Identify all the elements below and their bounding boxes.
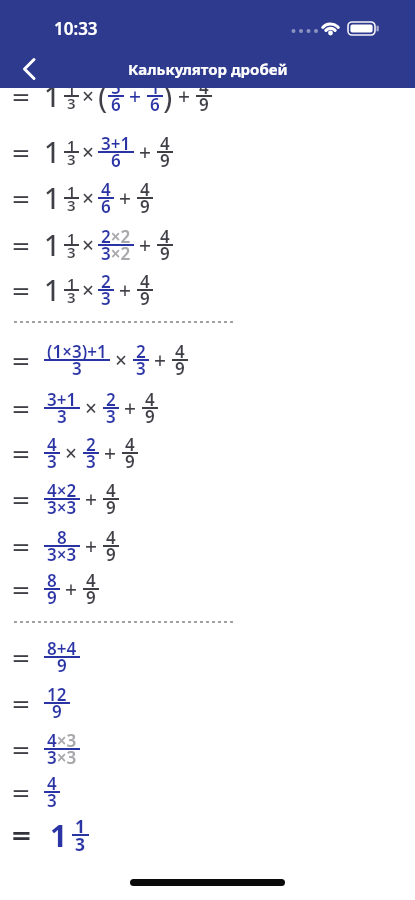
staticText: 2 <box>86 433 96 456</box>
staticText: = <box>12 80 30 113</box>
staticText: 3+1 <box>101 132 131 155</box>
staticText: 1 <box>44 133 61 171</box>
staticText: = <box>12 229 30 262</box>
staticText: 3 <box>136 357 146 380</box>
staticText: 4 <box>145 388 155 411</box>
staticText: 2×2 <box>101 225 131 248</box>
staticText: × <box>115 346 128 375</box>
staticText: 9 <box>106 543 116 566</box>
staticText: + <box>154 346 167 375</box>
staticText: + <box>119 184 132 213</box>
staticText: = <box>12 437 30 470</box>
staticText: Калькулятор дробей <box>128 59 288 79</box>
staticText: + <box>139 231 152 260</box>
staticText: 9 <box>57 654 67 677</box>
staticText: = <box>12 573 30 606</box>
staticText: 10:33 <box>54 17 98 40</box>
staticText: 3×3 <box>47 496 77 519</box>
staticText: + <box>124 394 137 423</box>
staticText: 9 <box>47 586 57 609</box>
staticText: = <box>12 182 30 215</box>
staticText: 9 <box>125 450 135 473</box>
staticText: 3 <box>72 357 82 380</box>
staticText: 8+4 <box>47 637 77 660</box>
staticText: 4 <box>140 270 150 293</box>
staticText: 4 <box>106 479 116 502</box>
staticText: 9 <box>160 242 170 265</box>
staticText: 9 <box>140 287 150 310</box>
staticText: + <box>104 439 117 468</box>
staticText: 9 <box>175 357 185 380</box>
staticText: 4 <box>199 76 209 99</box>
staticText: 6 <box>111 93 121 116</box>
staticText: 2 <box>136 340 146 363</box>
staticText: 3 <box>57 405 67 428</box>
staticText: 6 <box>101 195 111 218</box>
staticText: × <box>82 82 95 111</box>
staticText: × <box>82 231 95 260</box>
staticText: 5 <box>111 76 121 99</box>
staticText: 3 <box>67 149 76 169</box>
staticText: ) <box>163 75 173 117</box>
staticText: + <box>85 485 98 514</box>
staticText: 1 <box>67 181 76 201</box>
staticText: 8 <box>47 569 57 592</box>
staticText: 1 <box>44 226 61 264</box>
staticText: = <box>12 687 30 720</box>
staticText: = <box>12 818 31 853</box>
staticText: 1 <box>67 135 76 155</box>
staticText: = <box>12 733 30 766</box>
staticText: 4 <box>175 340 185 363</box>
staticText: 1 <box>44 179 61 217</box>
staticText: 4 <box>101 178 111 201</box>
staticText: = <box>12 392 30 425</box>
staticText: 9 <box>86 586 96 609</box>
staticText: 4 <box>47 772 57 795</box>
staticText: + <box>178 82 191 111</box>
staticText: 3 <box>47 450 57 473</box>
staticText: = <box>12 344 30 377</box>
staticText: 3 <box>106 405 116 428</box>
staticText: 3×2 <box>101 242 131 265</box>
staticText: 3×3 <box>47 543 77 566</box>
staticText: 1 <box>50 815 68 856</box>
staticText: = <box>12 274 30 307</box>
staticText: 6 <box>150 93 160 116</box>
staticText: 3 <box>86 450 96 473</box>
staticText: × <box>82 184 95 213</box>
staticText: 2 <box>106 388 116 411</box>
staticText: 9 <box>140 195 150 218</box>
staticText: 1 <box>75 814 86 838</box>
staticText: 3 <box>67 195 76 215</box>
staticText: 3 <box>67 242 76 262</box>
staticText: 12 <box>47 683 67 706</box>
staticText: 1 <box>150 76 160 99</box>
staticText: 3×3 <box>47 746 77 769</box>
staticText: 2 <box>101 270 111 293</box>
staticText: 4 <box>140 178 150 201</box>
staticText: 3 <box>75 832 86 856</box>
staticText: × <box>82 276 95 305</box>
staticText: 3 <box>47 789 57 812</box>
staticText: + <box>129 82 142 111</box>
staticText: 1 <box>67 228 76 248</box>
staticText: × <box>85 394 98 423</box>
staticText: + <box>65 575 78 604</box>
staticText: × <box>82 138 95 167</box>
staticText: 4 <box>47 433 57 456</box>
staticText: 9 <box>160 149 170 172</box>
staticText: + <box>119 276 132 305</box>
staticText: 4 <box>106 526 116 549</box>
staticText: 4×2 <box>47 479 77 502</box>
staticText: 3+1 <box>47 388 77 411</box>
staticText: 9 <box>145 405 155 428</box>
staticText: = <box>12 641 30 674</box>
staticText: 9 <box>52 700 62 723</box>
staticText: × <box>65 439 78 468</box>
staticText: 3 <box>67 93 76 113</box>
staticText: 4 <box>160 132 170 155</box>
staticText: + <box>85 532 98 561</box>
staticText: (1×3)+1 <box>47 340 107 363</box>
staticText: 1 <box>67 79 76 99</box>
button[interactable] <box>7 50 51 88</box>
